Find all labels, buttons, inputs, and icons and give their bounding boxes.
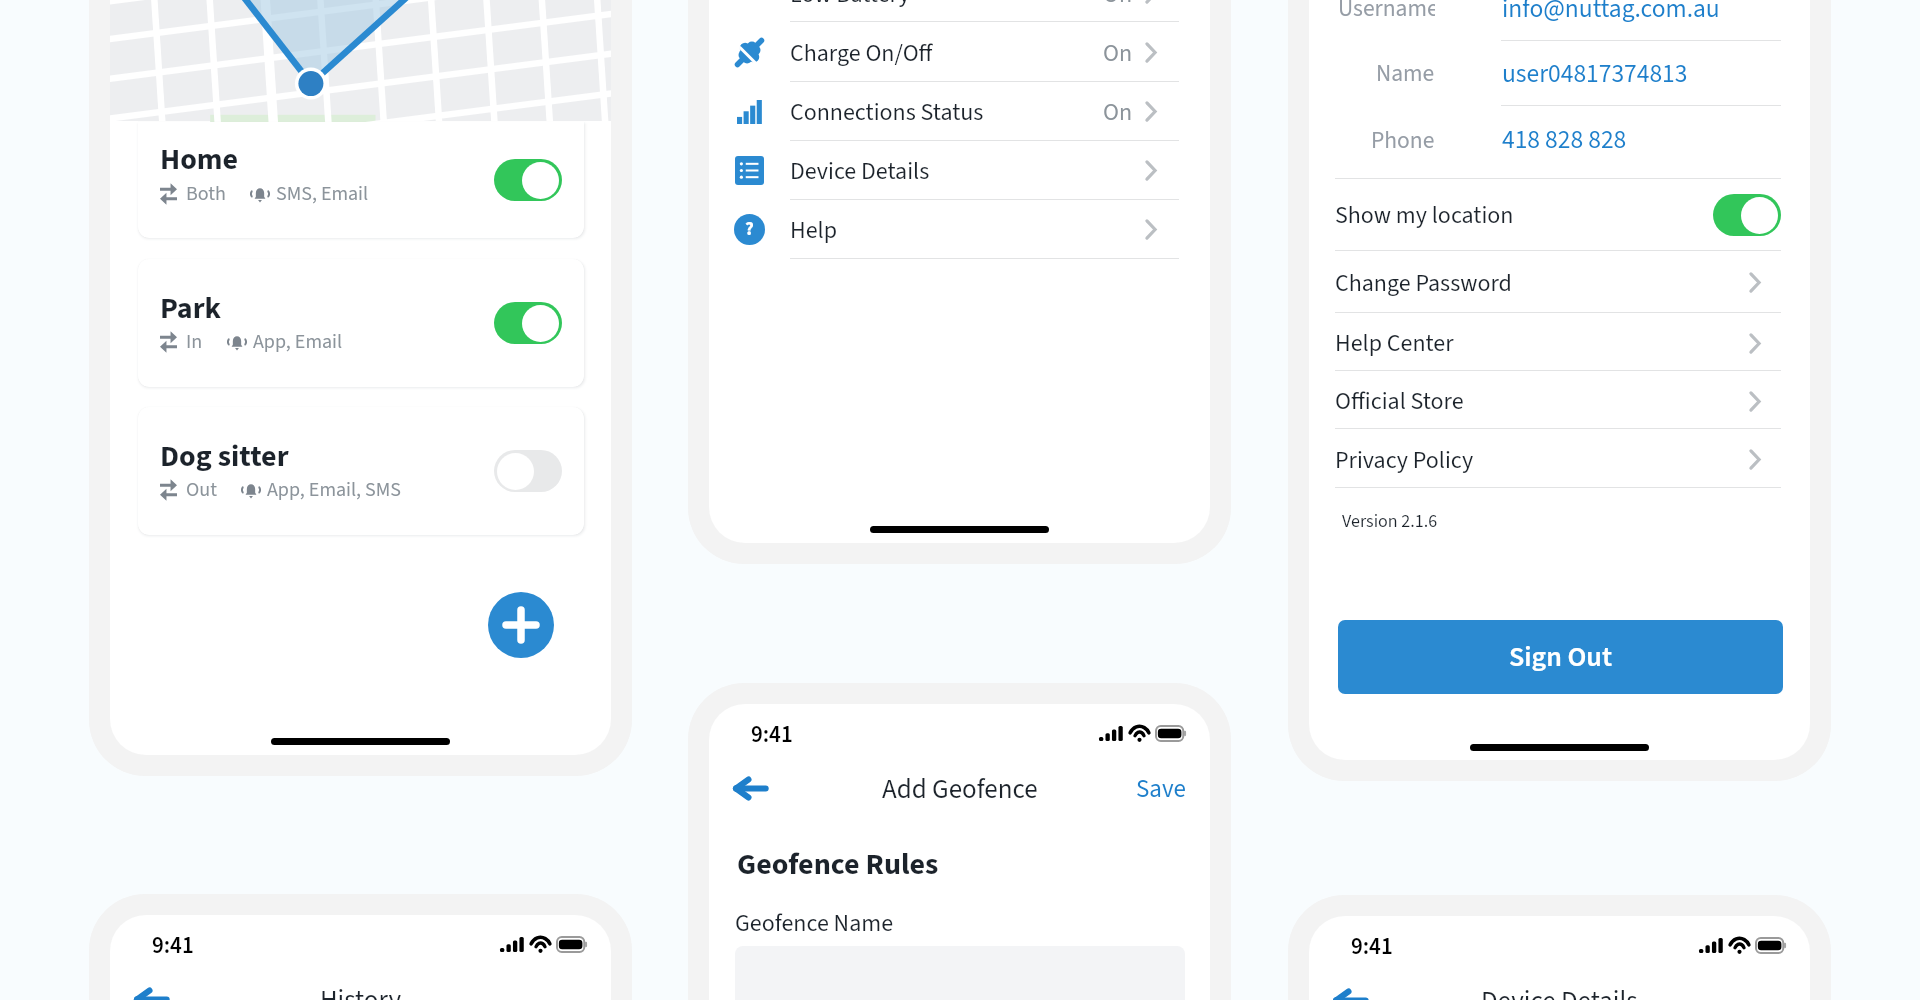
button[interactable]: Device Details — [709, 141, 1210, 200]
staticText: Both — [186, 180, 226, 208]
staticText: Sign Out — [1509, 637, 1612, 677]
button[interactable]: Charge On/Off — [709, 23, 1210, 82]
button[interactable]: Low Battery — [709, 0, 1210, 23]
staticText: Low Battery — [790, 0, 910, 11]
button[interactable]: Park — [138, 259, 584, 387]
staticText: 9:41 — [152, 929, 194, 959]
button[interactable]: Switch on — [1713, 194, 1781, 236]
staticText: info@nuttag.com.au — [1502, 0, 1720, 27]
staticText: Home — [160, 138, 239, 180]
staticText: ? — [745, 216, 754, 243]
button[interactable]: Switch off — [494, 450, 562, 492]
staticText: Show my location — [1335, 198, 1514, 232]
button[interactable]: Privacy Policy — [1335, 430, 1781, 489]
staticText: On — [1103, 0, 1133, 11]
staticText: Device Details — [1481, 982, 1638, 1000]
button[interactable]: ? — [709, 200, 1210, 259]
button[interactable]: Back — [1321, 971, 1379, 1000]
staticText: On — [1103, 95, 1133, 129]
button[interactable]: Sign Out — [1338, 620, 1783, 694]
staticText: Help — [790, 213, 837, 247]
staticText: Change Password — [1335, 266, 1512, 300]
button[interactable]: Switch on — [494, 302, 562, 344]
staticText: Privacy Policy — [1335, 443, 1474, 477]
button[interactable]: Back — [721, 759, 779, 817]
button[interactable]: Save — [1116, 760, 1186, 818]
staticText: SMS, Email — [276, 180, 369, 208]
staticText: Device Details — [790, 154, 930, 188]
staticText: Geofence Name — [735, 906, 894, 940]
staticText: 9:41 — [751, 718, 793, 748]
staticText: Out — [186, 476, 217, 504]
button[interactable]: Connections Status — [709, 82, 1210, 141]
button[interactable]: Change Password — [1335, 251, 1781, 314]
button[interactable]: Show my location — [1335, 179, 1781, 251]
button[interactable]: Official Store — [1335, 372, 1781, 430]
button[interactable]: Dog sitter — [138, 407, 584, 535]
staticText: App, Email — [253, 328, 343, 356]
staticText: Official Store — [1335, 384, 1464, 418]
staticText: Help Center — [1335, 326, 1454, 360]
staticText: Version 2.1.6 — [1342, 509, 1438, 535]
button[interactable]: Switch on — [494, 159, 562, 201]
button[interactable]: Help Center — [1335, 314, 1781, 372]
staticText: On — [1103, 36, 1133, 70]
button[interactable]: Home — [138, 122, 584, 238]
staticText: Dog sitter — [160, 435, 289, 477]
staticText: Name — [1376, 57, 1435, 90]
button[interactable]: Add geofence — [488, 592, 554, 658]
staticText: Username — [1338, 0, 1435, 25]
staticText: Charge On/Off — [790, 36, 933, 70]
staticText: 418 828 828 — [1502, 122, 1627, 158]
staticText: Add Geofence — [882, 770, 1038, 808]
staticText: Park — [160, 287, 222, 329]
staticText: Phone — [1371, 124, 1435, 157]
staticText: History — [320, 981, 402, 1000]
staticText: Save — [1136, 771, 1186, 807]
staticText: 9:41 — [1351, 930, 1393, 960]
staticText: user04817374813 — [1502, 56, 1688, 92]
staticText: Connections Status — [790, 95, 984, 129]
staticText: App, Email, SMS — [267, 476, 401, 504]
button[interactable]: Back — [122, 970, 180, 1000]
staticText: Geofence Rules — [737, 843, 939, 883]
staticText: In — [186, 328, 203, 356]
